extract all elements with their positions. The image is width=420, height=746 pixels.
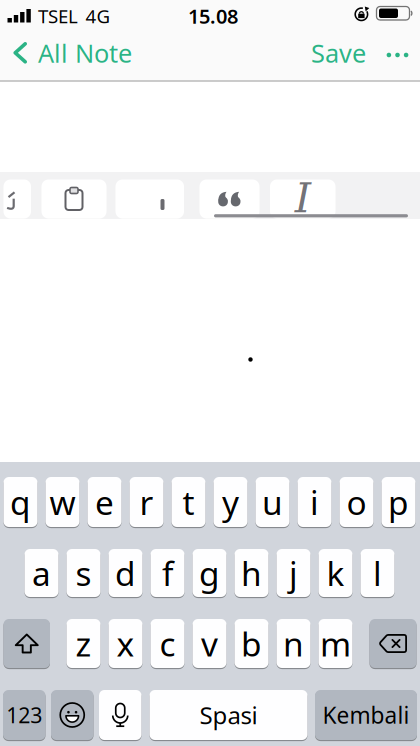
button[interactable]: More — [387, 53, 408, 57]
button[interactable]: f — [150, 549, 184, 597]
button[interactable]: d — [108, 549, 142, 597]
staticText: m — [320, 621, 351, 666]
button[interactable]: o — [339, 477, 373, 527]
button[interactable]: Dictate — [99, 690, 141, 740]
button[interactable]: k — [318, 549, 352, 597]
button[interactable]: w — [45, 477, 79, 527]
staticText: g — [199, 551, 220, 595]
button[interactable]: Undo — [3, 179, 31, 218]
staticText: TSEL — [38, 4, 78, 28]
button[interactable]: p — [381, 477, 415, 527]
staticText: y — [222, 480, 239, 524]
button[interactable]: e — [87, 477, 121, 527]
staticText: Kembali — [322, 700, 409, 730]
button[interactable]: Format — [115, 179, 184, 218]
staticText: i — [310, 480, 319, 524]
button[interactable]: l — [360, 549, 394, 597]
staticText: n — [283, 621, 304, 666]
button[interactable]: Emoji — [51, 690, 93, 740]
staticText: b — [241, 621, 262, 666]
staticText: k — [326, 551, 344, 595]
button[interactable]: q — [3, 477, 37, 527]
staticText: 15.08 — [188, 3, 238, 29]
staticText: f — [162, 551, 173, 595]
button[interactable]: v — [192, 619, 226, 668]
button[interactable]: Paste — [41, 179, 106, 218]
button[interactable]: Save — [276, 36, 366, 70]
staticText: z — [75, 621, 91, 666]
button[interactable]: n — [276, 619, 310, 668]
button[interactable]: x — [108, 619, 142, 668]
button[interactable]: Delete — [369, 619, 416, 668]
staticText: Spasi — [199, 699, 257, 731]
button[interactable]: h — [234, 549, 268, 597]
button[interactable]: s — [66, 549, 100, 597]
staticText: Save — [311, 36, 366, 70]
staticText: s — [75, 551, 91, 595]
staticText: e — [95, 480, 114, 524]
button[interactable]: a — [24, 549, 58, 597]
staticText: w — [49, 480, 75, 524]
staticText: I — [295, 174, 311, 222]
button[interactable]: b — [234, 619, 268, 668]
staticText: h — [241, 551, 262, 595]
staticText: a — [32, 551, 51, 595]
button[interactable]: Italic — [270, 179, 335, 218]
staticText: 123 — [6, 701, 42, 729]
button[interactable]: m — [318, 619, 352, 668]
staticText: x — [116, 621, 134, 666]
button[interactable]: Shift — [3, 619, 50, 668]
staticText: c — [159, 621, 175, 666]
button[interactable]: 123 — [3, 690, 45, 740]
button[interactable]: z — [66, 619, 100, 668]
button[interactable]: c — [150, 619, 184, 668]
staticText: q — [10, 480, 31, 524]
button[interactable]: g — [192, 549, 226, 597]
button[interactable]: Spasi — [149, 690, 307, 740]
staticText: t — [182, 480, 194, 524]
staticText: v — [201, 621, 218, 666]
button[interactable]: t — [171, 477, 205, 527]
staticText: All Note — [38, 36, 132, 70]
staticText: u — [262, 480, 283, 524]
staticText: d — [115, 551, 136, 595]
button[interactable]: u — [255, 477, 289, 527]
button[interactable]: y — [213, 477, 247, 527]
staticText: j — [289, 551, 298, 595]
button[interactable]: All Note — [13, 36, 203, 70]
staticText: o — [346, 480, 366, 524]
button[interactable]: Kembali — [315, 690, 417, 740]
staticText: l — [373, 551, 382, 595]
button[interactable]: j — [276, 549, 310, 597]
staticText: r — [139, 480, 153, 524]
staticText: p — [388, 480, 409, 524]
button[interactable]: i — [297, 477, 331, 527]
button[interactable]: r — [129, 477, 163, 527]
button[interactable]: Quote — [199, 179, 259, 218]
staticText: 4G — [85, 4, 110, 28]
